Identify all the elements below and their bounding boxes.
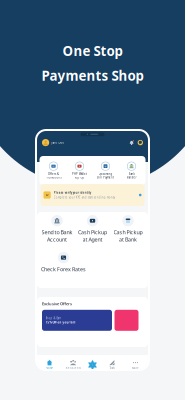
staticText: 15% OFF on your bill bbox=[45, 321, 75, 324]
staticText: Track bbox=[109, 366, 114, 370]
button[interactable]: Send money bbox=[87, 360, 98, 370]
staticText: Home bbox=[45, 366, 53, 370]
button[interactable]: Offers & bbox=[42, 162, 65, 179]
button[interactable]: ID bbox=[40, 184, 144, 206]
button[interactable]: Cash Pickup bbox=[75, 215, 109, 243]
button[interactable]: PHP Wallet bbox=[68, 162, 91, 179]
button[interactable]: Home bbox=[40, 360, 59, 370]
button[interactable]: Check Forex Rates bbox=[41, 252, 86, 273]
staticText: Jane Doe bbox=[51, 141, 64, 144]
staticText: Promotions bbox=[45, 176, 61, 179]
staticText: Account bbox=[47, 236, 67, 243]
staticText: Cash Pickup bbox=[113, 229, 142, 236]
staticText: Complete your KYC and start sending mone… bbox=[54, 196, 115, 199]
staticText: at Agent bbox=[82, 236, 102, 243]
button[interactable]: Recipients bbox=[64, 360, 83, 370]
staticText: Recipients bbox=[66, 366, 81, 370]
staticText: Bank bbox=[128, 172, 134, 176]
button[interactable]: Send to Bank bbox=[40, 215, 74, 243]
staticText: Bill Payment bbox=[97, 176, 114, 179]
staticText: at Bank bbox=[119, 236, 137, 243]
staticText: Exclusive Offers bbox=[42, 301, 72, 306]
button[interactable]: Chat support bbox=[134, 140, 143, 145]
button[interactable]: Notifications bbox=[129, 140, 134, 145]
staticText: Check Forex Rates bbox=[41, 266, 86, 273]
button[interactable]: Shop & Earn bbox=[42, 310, 112, 331]
button[interactable]: Bank bbox=[120, 162, 143, 179]
staticText: One Stop bbox=[62, 42, 122, 60]
staticText: Upcoming bbox=[98, 172, 112, 176]
staticText: Please verify your identity bbox=[54, 191, 91, 194]
staticText: Offers & bbox=[48, 172, 59, 176]
button[interactable]: Track bbox=[102, 360, 121, 370]
staticText: PHP Wallet bbox=[72, 172, 87, 176]
staticText: ID bbox=[46, 193, 49, 197]
staticText: More bbox=[132, 366, 139, 370]
staticText: Top Up bbox=[74, 176, 84, 179]
staticText: Transfer bbox=[126, 176, 136, 179]
button[interactable]: Upcoming bbox=[94, 162, 117, 179]
button[interactable]: More bbox=[126, 360, 145, 370]
button[interactable]: Cash Pickup bbox=[111, 215, 145, 243]
staticText: Cash Pickup bbox=[78, 229, 107, 236]
button[interactable]: Offer bbox=[114, 310, 138, 331]
staticText: Payments Shop bbox=[41, 67, 143, 84]
staticText: Shop & Earn bbox=[45, 316, 61, 320]
staticText: Send to Bank bbox=[41, 229, 72, 236]
